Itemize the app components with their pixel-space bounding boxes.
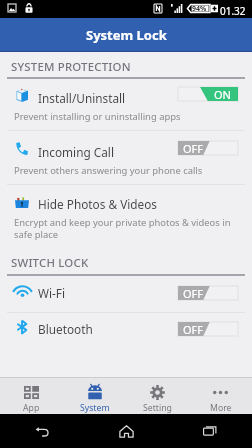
staticText: 01.32	[220, 4, 246, 18]
button[interactable]: Recents	[168, 414, 252, 448]
staticText: safe place	[14, 228, 59, 241]
staticText: System Lock	[86, 26, 167, 44]
staticText: Prevent installing or uninstalling apps	[14, 110, 181, 123]
button[interactable]: Setting	[126, 377, 189, 414]
staticText: Incoming Call	[38, 144, 114, 160]
button[interactable]: Back	[0, 414, 84, 448]
staticText: App	[23, 402, 40, 414]
staticText: System	[80, 402, 110, 414]
staticText: Install/Uninstall	[38, 90, 126, 106]
staticText: Prevent others answering your phone call…	[14, 164, 203, 177]
button[interactable]: System	[63, 377, 126, 414]
button[interactable]: App	[0, 377, 63, 414]
staticText: Wi-Fi	[38, 285, 65, 301]
staticText: Bluetooth	[38, 321, 93, 337]
staticText: More	[210, 402, 232, 414]
staticText: Hide Photos & Videos	[38, 196, 157, 212]
staticText: OFF	[183, 141, 204, 155]
button[interactable]: Home	[84, 414, 168, 448]
staticText: SYSTEM PROTECTION	[11, 59, 131, 75]
staticText: ON	[214, 87, 231, 101]
staticText: 94%	[192, 4, 207, 13]
staticText: Setting	[143, 402, 172, 414]
staticText: OFF	[183, 286, 204, 300]
button[interactable]: Switch off	[178, 141, 238, 155]
staticText: SWITCH LOCK	[11, 255, 89, 271]
button[interactable]: Switch off	[178, 322, 238, 336]
button[interactable]: Switch on	[178, 87, 238, 101]
staticText: OFF	[183, 322, 204, 336]
button[interactable]: More	[189, 377, 252, 414]
button[interactable]: Switch off	[178, 286, 238, 300]
staticText: Encrypt and keep your private photos & v…	[14, 216, 231, 229]
